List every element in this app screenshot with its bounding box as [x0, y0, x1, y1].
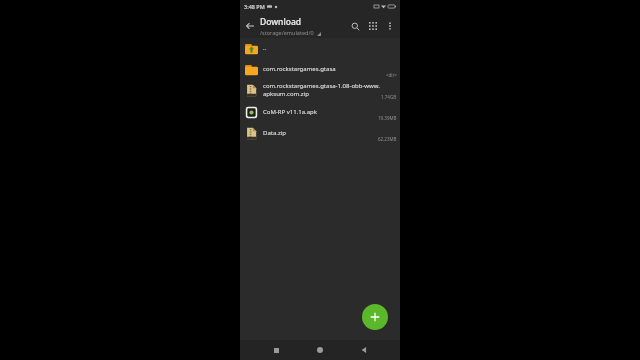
button[interactable]: Data.zip — [240, 122, 400, 143]
staticText: 19.39MB — [378, 115, 397, 121]
button[interactable]: com.rockstargames.gtasa — [240, 58, 400, 79]
button[interactable]: Add — [362, 304, 388, 330]
button[interactable]: Home — [312, 342, 328, 358]
button[interactable]: Grid view — [364, 17, 382, 35]
button[interactable]: Back — [356, 342, 372, 358]
staticText: CoM-RP v11.1a.apk — [263, 108, 397, 116]
button[interactable]: Back — [240, 16, 260, 36]
button[interactable]: Recents — [268, 342, 284, 358]
button[interactable]: Search — [346, 17, 364, 35]
staticText: com.rockstargames.gtasa — [263, 65, 397, 73]
button[interactable]: More options — [382, 18, 398, 34]
button[interactable]: CoM-RP v11.1a.apk — [240, 101, 400, 122]
button[interactable]: .. — [240, 38, 400, 58]
staticText: 62.23MB — [378, 136, 397, 142]
staticText: 3:48 PM — [244, 3, 265, 10]
staticText: /storage/emulated/0 — [260, 29, 314, 36]
button[interactable]: com.rockstargames.gtasa-1.08-obb-www. ap… — [240, 79, 400, 101]
staticText: Data.zip — [263, 129, 397, 137]
staticText: Download — [260, 16, 302, 28]
staticText: 1.74GB — [381, 94, 397, 100]
staticText: <dir> — [386, 72, 397, 78]
staticText: .. — [263, 44, 397, 52]
staticText: com.rockstargames.gtasa-1.08-obb-www. ap… — [263, 82, 397, 98]
